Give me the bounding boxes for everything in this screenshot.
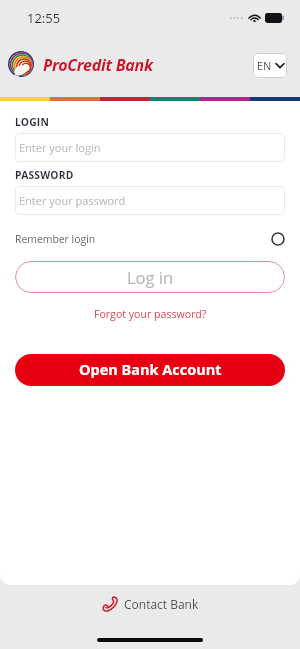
staticText: Enter your login (19, 140, 101, 155)
staticText: LOGIN (15, 115, 50, 129)
button[interactable]: Contact Bank (96, 592, 205, 616)
button[interactable]: Remember login (15, 227, 285, 251)
staticText: Contact Bank (124, 596, 199, 612)
button[interactable]: Open Bank Account (15, 354, 285, 386)
staticText: EN (257, 58, 272, 73)
staticText: Open Bank Account (79, 360, 222, 380)
button[interactable]: Log in (15, 261, 285, 293)
staticText: Remember login (15, 232, 96, 246)
staticText: ProCredit Bank (43, 54, 153, 76)
button[interactable]: Select language (253, 53, 287, 78)
button[interactable]: Enter your password (15, 186, 285, 215)
staticText: PASSWORD (15, 168, 74, 182)
button[interactable]: Enter your login (15, 133, 285, 162)
staticText: 12:55 (27, 9, 61, 27)
button[interactable]: Forgot your password? (90, 303, 211, 325)
staticText: Log in (127, 266, 174, 288)
staticText: Enter your password (19, 193, 126, 208)
